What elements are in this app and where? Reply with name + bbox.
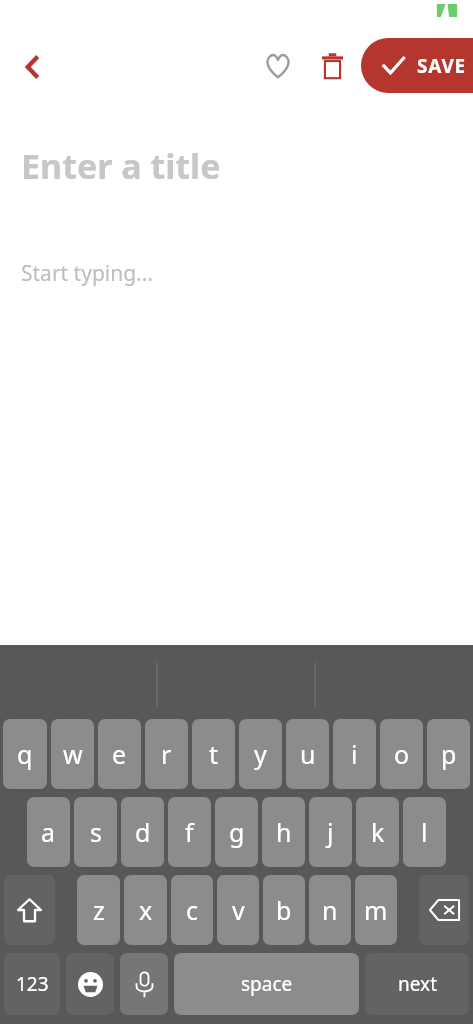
button[interactable]: e bbox=[98, 719, 141, 789]
button[interactable]: y bbox=[239, 719, 282, 789]
button[interactable]: Delete bbox=[308, 42, 356, 90]
button[interactable]: m bbox=[355, 875, 397, 945]
button[interactable]: h bbox=[262, 797, 305, 867]
button[interactable]: Back bbox=[8, 42, 58, 92]
button[interactable]: Backspace bbox=[419, 875, 469, 945]
button[interactable]: z bbox=[77, 875, 120, 945]
button[interactable]: Start typing... bbox=[0, 250, 473, 296]
staticText: Enter a title bbox=[21, 143, 221, 189]
staticText: q bbox=[17, 737, 33, 771]
button[interactable]: j bbox=[309, 797, 352, 867]
staticText: v bbox=[232, 893, 245, 927]
staticText: i bbox=[351, 737, 358, 771]
button[interactable]: next bbox=[365, 953, 469, 1015]
staticText: m bbox=[364, 893, 388, 927]
staticText: next bbox=[398, 971, 437, 997]
staticText: t bbox=[209, 737, 219, 771]
staticText: h bbox=[276, 815, 292, 849]
button[interactable]: r bbox=[145, 719, 188, 789]
staticText: b bbox=[276, 893, 292, 927]
button[interactable]: x bbox=[124, 875, 167, 945]
button[interactable]: b bbox=[263, 875, 305, 945]
button[interactable]: q bbox=[3, 719, 47, 789]
staticText: x bbox=[139, 893, 153, 927]
button[interactable]: Favorite bbox=[254, 42, 302, 90]
button[interactable]: f bbox=[168, 797, 211, 867]
button[interactable]: u bbox=[286, 719, 329, 789]
staticText: c bbox=[186, 893, 199, 927]
staticText: z bbox=[93, 893, 105, 927]
button[interactable]: s bbox=[74, 797, 117, 867]
staticText: u bbox=[300, 737, 316, 771]
staticText: a bbox=[41, 815, 56, 849]
button[interactable]: d bbox=[121, 797, 164, 867]
button[interactable]: g bbox=[215, 797, 258, 867]
button[interactable]: SAVE bbox=[361, 38, 473, 93]
staticText: f bbox=[185, 815, 194, 849]
button[interactable]: c bbox=[171, 875, 213, 945]
staticText: k bbox=[371, 815, 385, 849]
staticText: Start typing... bbox=[21, 259, 154, 288]
button[interactable]: Voice input bbox=[120, 953, 168, 1015]
button[interactable]: p bbox=[427, 719, 470, 789]
button[interactable]: i bbox=[333, 719, 376, 789]
button[interactable]: l bbox=[403, 797, 446, 867]
button[interactable]: w bbox=[51, 719, 94, 789]
staticText: e bbox=[112, 737, 127, 771]
staticText: l bbox=[421, 815, 428, 849]
button[interactable]: k bbox=[356, 797, 399, 867]
staticText: SAVE bbox=[417, 53, 467, 79]
staticText: 123 bbox=[16, 971, 49, 997]
staticText: s bbox=[90, 815, 102, 849]
staticText: p bbox=[441, 737, 457, 771]
staticText: w bbox=[63, 737, 83, 771]
staticText: g bbox=[229, 815, 245, 849]
staticText: y bbox=[254, 737, 267, 771]
button[interactable]: n bbox=[309, 875, 351, 945]
button[interactable]: a bbox=[27, 797, 70, 867]
button[interactable]: space bbox=[174, 953, 359, 1015]
button[interactable]: Emoji bbox=[66, 953, 114, 1015]
button[interactable]: o bbox=[380, 719, 423, 789]
staticText: r bbox=[161, 737, 172, 771]
staticText: o bbox=[394, 737, 410, 771]
staticText: d bbox=[135, 815, 151, 849]
staticText: n bbox=[322, 893, 338, 927]
button[interactable]: t bbox=[192, 719, 235, 789]
button[interactable]: Shift bbox=[4, 875, 55, 945]
button[interactable]: v bbox=[217, 875, 259, 945]
staticText: space bbox=[241, 971, 293, 997]
staticText: j bbox=[327, 815, 334, 849]
button[interactable]: Enter a title bbox=[0, 137, 473, 195]
button[interactable]: 123 bbox=[4, 953, 60, 1015]
